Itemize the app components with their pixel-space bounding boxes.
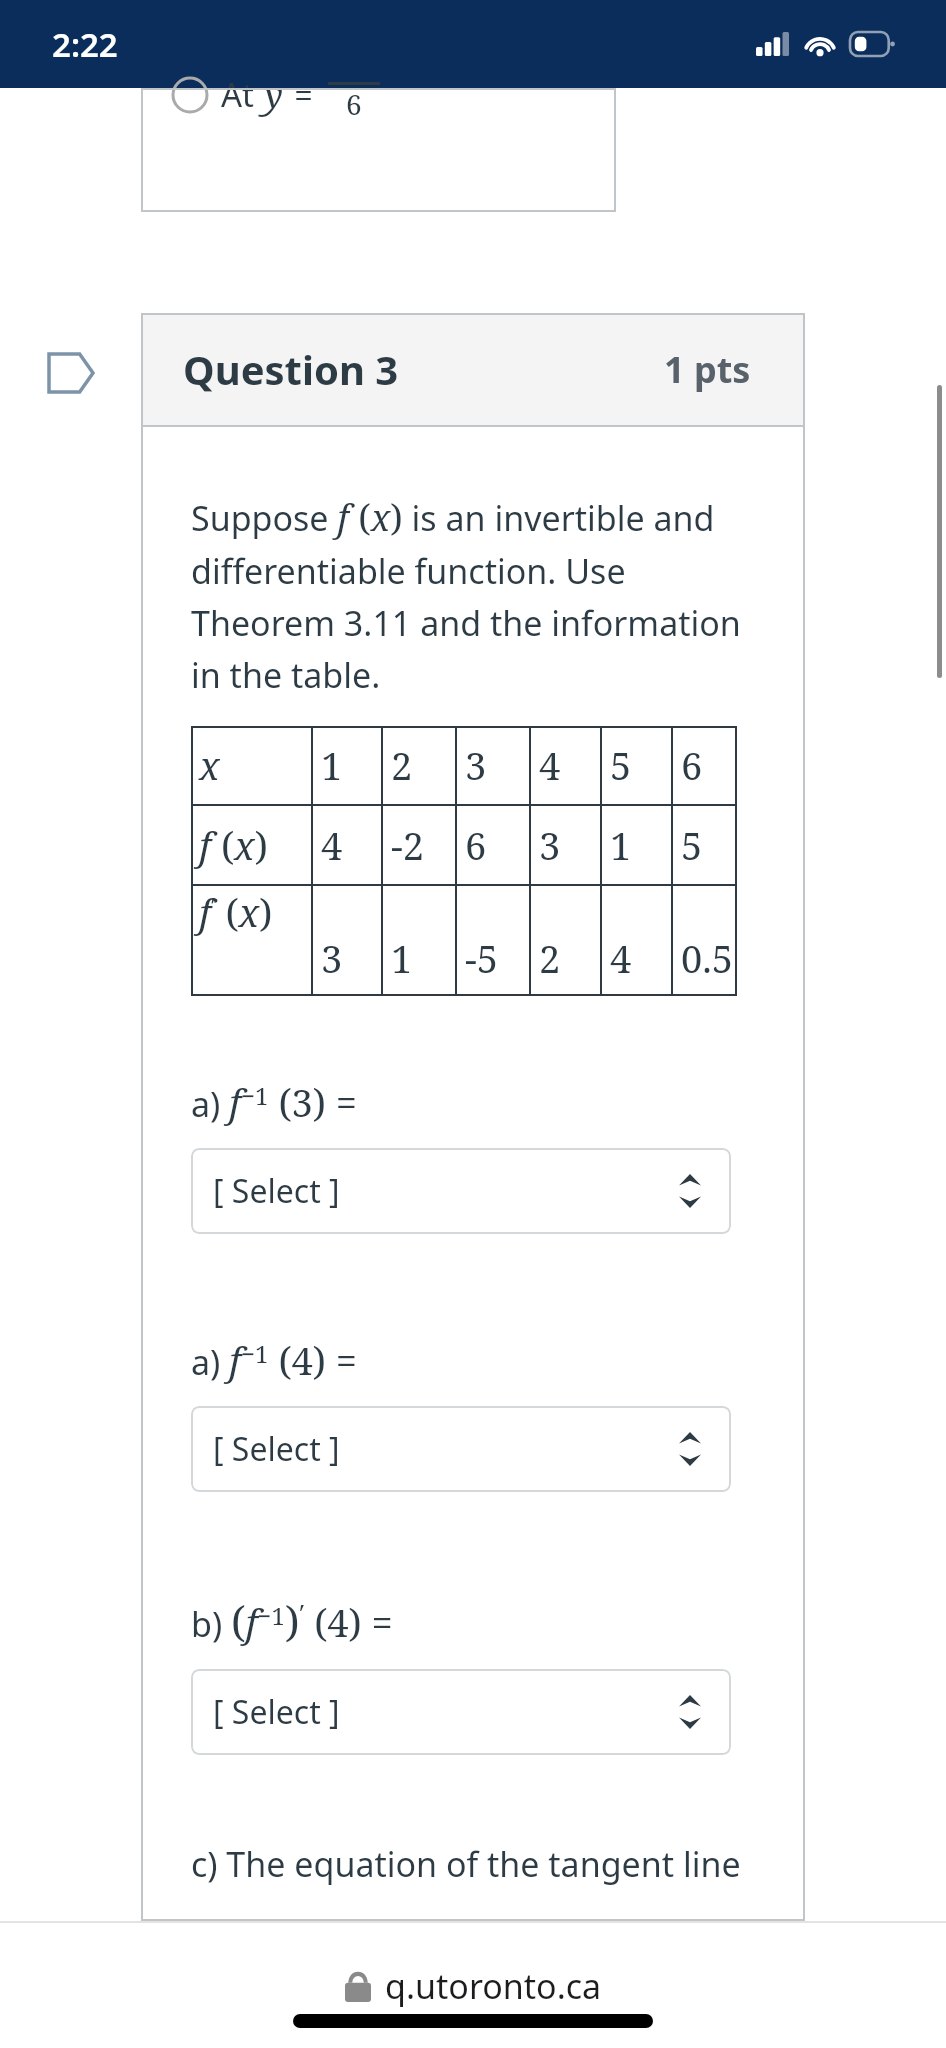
staticText: a) f−1 (4) = — [191, 1334, 358, 1386]
staticText: b) (f−1)′ (4) = — [191, 1592, 393, 1649]
other: Secure connection — [345, 1970, 371, 2002]
staticText: 4 — [321, 819, 343, 871]
staticText: x — [199, 739, 220, 791]
staticText: 1 — [391, 932, 413, 984]
button[interactable]: [ Select ] — [191, 1406, 731, 1492]
staticText: 2 — [391, 739, 413, 791]
staticText: [ Select ] — [213, 1169, 340, 1213]
staticText: 4 — [610, 932, 632, 984]
staticText: 2 — [539, 932, 561, 984]
button[interactable]: [ Select ] — [191, 1669, 731, 1755]
staticText: 1 pts — [664, 345, 751, 394]
staticText: 1 — [610, 819, 632, 871]
staticText: Question 3 — [183, 342, 399, 396]
staticText: Suppose f (x) is an invertible and diffe… — [191, 493, 765, 698]
staticText: 0.5 — [681, 932, 733, 984]
staticText: [ Select ] — [213, 1690, 340, 1734]
other: Flag question — [47, 352, 95, 394]
staticText: 6 — [681, 739, 703, 791]
staticText: 6 — [346, 85, 362, 123]
staticText: q.utoronto.ca — [385, 1963, 602, 2009]
button[interactable]: Secure connection — [345, 1963, 602, 2009]
staticText: 3 — [465, 739, 487, 791]
staticText: [ Select ] — [213, 1427, 340, 1471]
staticText: y — [264, 70, 284, 119]
staticText: a) f−1 (3) = — [191, 1076, 358, 1128]
staticText: c) The equation of the tangent line of f… — [191, 1841, 765, 1921]
staticText: f (x) — [199, 819, 269, 871]
staticText: 5 — [610, 739, 632, 791]
staticText: 3 — [321, 932, 343, 984]
staticText: 2:22 — [52, 22, 118, 67]
staticText: f′ (x) — [199, 886, 273, 938]
staticText: = — [294, 72, 314, 118]
staticText: 5 — [681, 819, 703, 871]
staticText: 3 — [539, 819, 561, 871]
button[interactable]: [ Select ] — [191, 1148, 731, 1234]
staticText: At — [221, 72, 254, 117]
staticText: 1 — [321, 739, 343, 791]
staticText: 4 — [539, 739, 561, 791]
staticText: -2 — [391, 819, 425, 871]
staticText: -5 — [465, 932, 499, 984]
staticText: 6 — [465, 819, 487, 871]
